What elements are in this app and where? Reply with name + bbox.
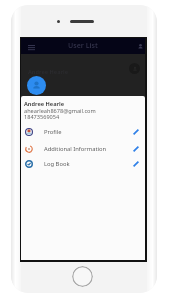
button[interactable]: Edit Profile — [131, 127, 141, 137]
button[interactable]: Profile — [21, 124, 145, 139]
staticText: Additional Information — [44, 145, 107, 153]
staticText: Andree Hearle — [28, 68, 69, 76]
staticText: Profile — [44, 128, 62, 136]
staticText: User List — [68, 41, 98, 51]
button[interactable]: Edit Additional Information — [131, 144, 141, 154]
staticText: ahearleah8678@gmail.com — [24, 107, 96, 115]
button[interactable]: Menu — [28, 45, 35, 50]
button[interactable]: Log Book — [21, 156, 145, 171]
button[interactable]: Account — [137, 43, 144, 50]
staticText: 18473569054 — [24, 113, 60, 121]
button[interactable]: Additional Information — [21, 141, 145, 156]
staticText: Log Book — [44, 160, 70, 168]
staticText: Andree Hearle — [24, 100, 65, 108]
button[interactable]: Edit Log Book — [131, 159, 141, 169]
